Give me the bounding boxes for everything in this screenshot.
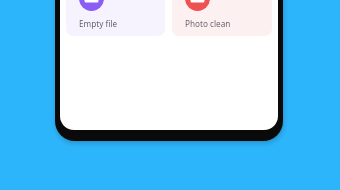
staticText: Empty file [79, 18, 118, 29]
other: Empty file [79, 0, 104, 11]
button[interactable]: Photo clean [172, 0, 272, 36]
button[interactable]: Empty file [66, 0, 165, 36]
other: Photo clean [185, 0, 210, 11]
staticText: Photo clean [185, 18, 231, 29]
